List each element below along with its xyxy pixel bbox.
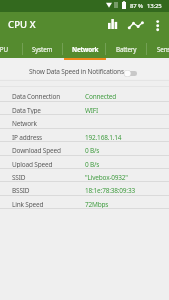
button[interactable]: Sensors [147,38,169,58]
button[interactable]: SSID [0,169,169,182]
staticText: 18:1e:78:38:09:33 [85,186,135,195]
staticText: IP address [12,133,42,142]
button[interactable]: Download Speed [0,142,169,155]
button[interactable]: Battery [105,38,147,58]
staticText: Show Data Speed in Notifications [29,67,124,76]
staticText: Connected [85,92,117,101]
button[interactable]: Data Type [0,102,169,115]
staticText: Link Speed [12,200,44,209]
staticText: SSID [12,173,26,182]
button[interactable]: Network [0,115,169,128]
staticText: Download Speed [12,146,61,155]
button[interactable]: Line chart [125,12,144,38]
button[interactable]: Show Data Speed in Notifications [0,60,169,79]
button[interactable]: Upload Speed [0,156,169,169]
staticText: Sensors [157,45,169,54]
staticText: 72Mbps [85,200,109,209]
button[interactable]: CPU [0,38,23,58]
staticText: Network [12,119,37,128]
button[interactable]: Data Connection [0,88,169,101]
staticText: Upload Speed [12,160,53,169]
button[interactable]: Link Speed [0,196,169,209]
staticText: Data Connection [12,92,60,101]
staticText: "Livebox-0932" [85,173,128,182]
staticText: 192.168.1.14 [85,133,122,142]
button[interactable]: Network [64,38,106,58]
button[interactable]: System [22,38,63,58]
staticText: Network [72,45,99,54]
staticText: Data Type [12,106,41,115]
staticText: Battery [116,45,137,54]
button[interactable]: IP address [0,129,169,142]
button[interactable]: More options [148,12,167,38]
staticText: 0 B/s [85,146,100,155]
staticText: 0 B/s [85,160,100,169]
staticText: CPU X [8,18,36,31]
staticText: 13:25 [147,2,162,10]
staticText: 87 % [130,2,143,10]
staticText: WIFI [85,106,99,115]
button[interactable]: Bar chart [102,12,123,38]
staticText: BSSID [12,186,30,195]
button[interactable]: BSSID [0,182,169,195]
staticText: System [32,45,53,54]
staticText: CPU [0,45,8,54]
